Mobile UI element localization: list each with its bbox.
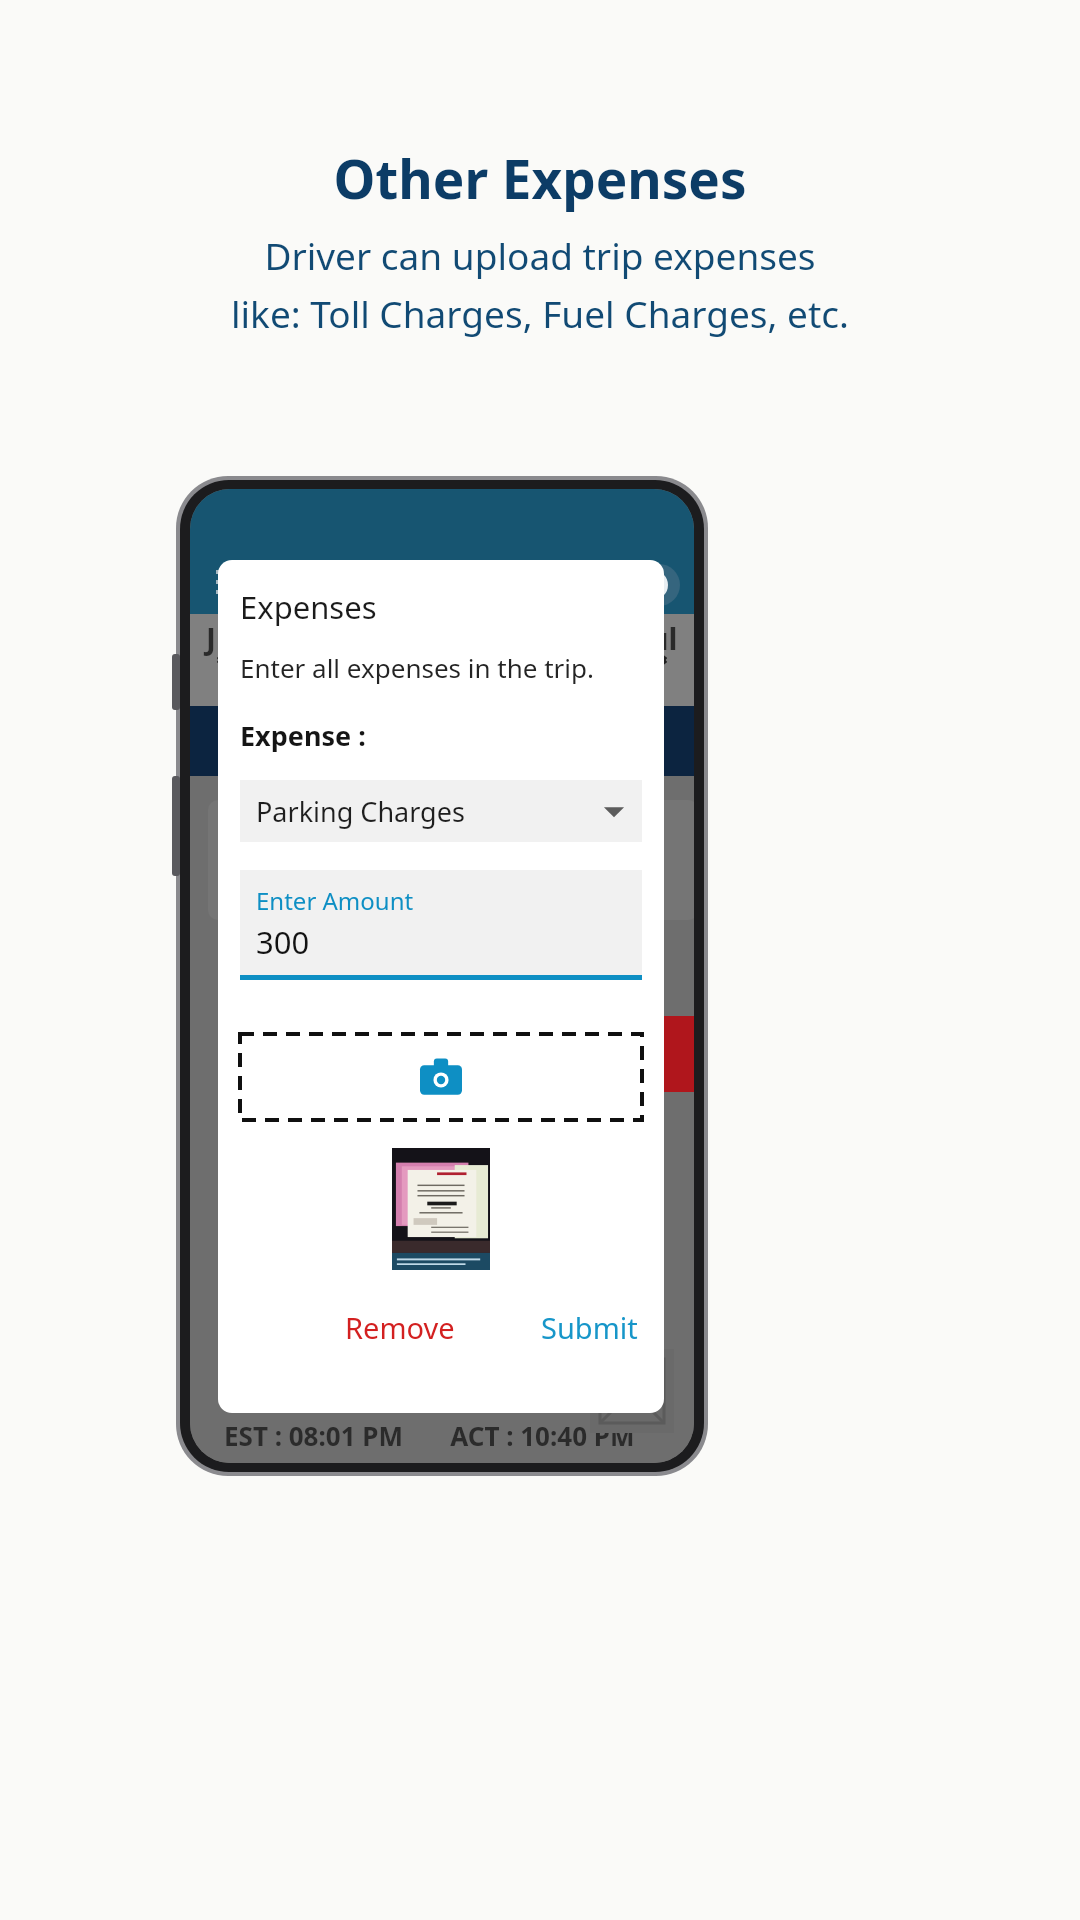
button[interactable]: Remove — [335, 1302, 465, 1353]
staticText: Expense : — [240, 717, 366, 754]
staticText: Enter Amount — [256, 884, 414, 917]
staticText: Expenses — [240, 586, 377, 628]
staticText: Jul — [639, 618, 678, 659]
staticText: EST : 08:01 PM ACT : 10:40 PM — [224, 1418, 635, 1453]
button[interactable]: On Duty — [546, 570, 668, 600]
button[interactable]: Enter Amount — [240, 870, 642, 980]
staticText: Remove — [345, 1308, 455, 1347]
button[interactable]: Menu — [216, 570, 250, 594]
staticText: Enter all expenses in the trip. — [240, 650, 594, 685]
staticText: Parking Charges — [256, 793, 465, 830]
button[interactable]: Parking Charges — [240, 780, 642, 842]
staticText: Submit — [541, 1308, 638, 1347]
staticText: Driver can upload trip expenses — [264, 230, 816, 280]
staticText: Ju — [206, 618, 236, 659]
other: Open dropdown — [602, 799, 626, 823]
staticText: 300 — [256, 921, 310, 963]
button[interactable]: Submit — [537, 1302, 642, 1353]
button[interactable]: Take photo of receipt — [240, 1034, 642, 1120]
staticText: Other Expenses — [333, 142, 747, 214]
staticText: like: Toll Charges, Fuel Charges, etc. — [231, 288, 849, 338]
